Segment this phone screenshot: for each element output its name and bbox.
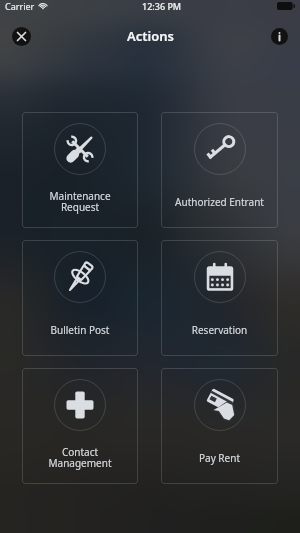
button[interactable]: Maintenance Request bbox=[22, 112, 138, 228]
button[interactable]: Contact Management bbox=[22, 368, 138, 484]
button[interactable]: Close bbox=[8, 23, 34, 49]
button[interactable]: Info bbox=[266, 23, 292, 49]
staticText: Carrier bbox=[5, 0, 35, 12]
staticText: Contact Management bbox=[22, 445, 138, 470]
button[interactable]: Authorized Entrant bbox=[161, 112, 278, 228]
staticText: Reservation bbox=[161, 323, 278, 337]
staticText: Pay Rent bbox=[161, 451, 278, 465]
button[interactable]: Pay Rent bbox=[161, 368, 278, 484]
staticText: 12:36 PM bbox=[142, 0, 182, 12]
button[interactable]: Bulletin Post bbox=[22, 240, 138, 356]
staticText: Actions bbox=[127, 27, 174, 45]
staticText: Maintenance Request bbox=[22, 189, 138, 214]
staticText: Authorized Entrant bbox=[161, 195, 278, 209]
button[interactable]: Reservation bbox=[161, 240, 278, 356]
staticText: Bulletin Post bbox=[22, 323, 138, 337]
